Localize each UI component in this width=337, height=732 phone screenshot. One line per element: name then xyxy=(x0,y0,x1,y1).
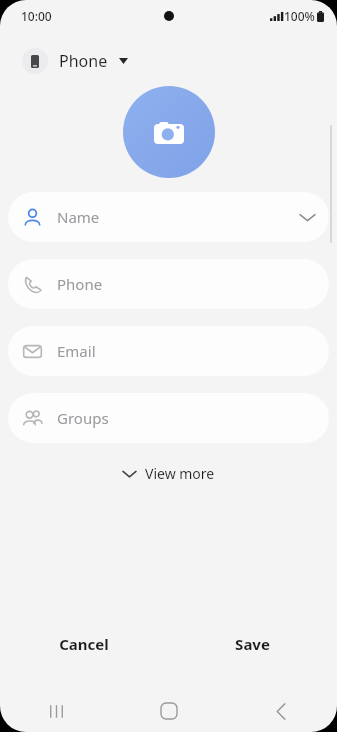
staticText: Cancel xyxy=(59,634,109,654)
button[interactable]: Recents xyxy=(0,690,113,732)
staticText: 10:00 xyxy=(21,8,52,24)
staticText: Phone xyxy=(57,274,315,294)
button[interactable]: Phone xyxy=(18,42,132,80)
staticText: Save xyxy=(235,634,270,654)
button[interactable]: Email xyxy=(8,326,329,376)
staticText: Name xyxy=(57,207,300,227)
button[interactable]: View more xyxy=(111,457,227,490)
button[interactable]: Save xyxy=(168,622,337,666)
staticText: View more xyxy=(145,464,215,483)
button[interactable]: Home xyxy=(113,690,225,732)
button[interactable]: Name xyxy=(8,192,329,242)
button[interactable]: Groups xyxy=(8,393,329,443)
staticText: Phone xyxy=(59,50,108,72)
button[interactable]: Phone xyxy=(8,259,329,309)
button[interactable]: Back xyxy=(225,690,337,732)
staticText: Email xyxy=(57,341,315,361)
staticText: Groups xyxy=(57,408,315,428)
staticText: 100% xyxy=(284,8,315,24)
button[interactable]: Add contact photo xyxy=(123,86,215,178)
button[interactable]: Cancel xyxy=(0,622,168,666)
